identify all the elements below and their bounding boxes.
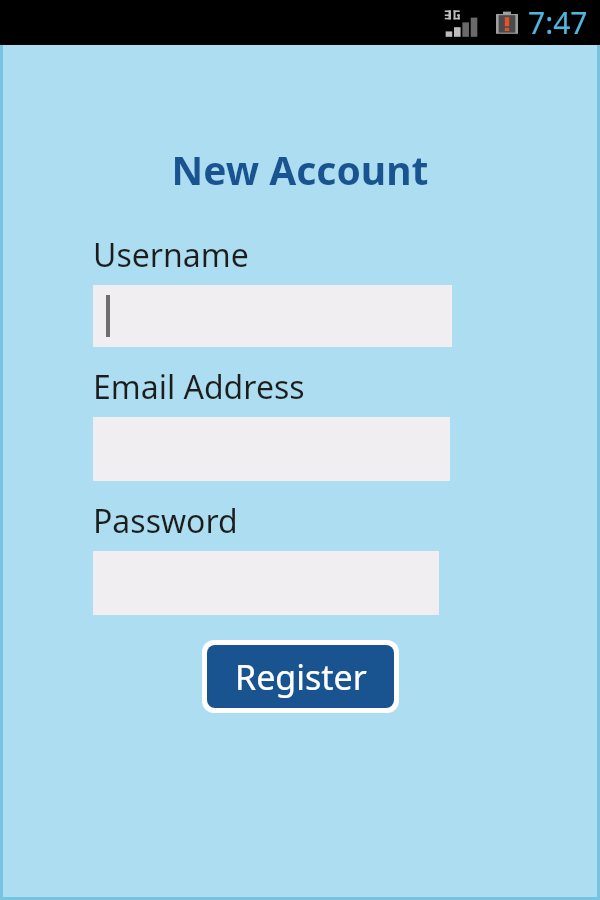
staticText: Username (93, 233, 249, 277)
staticText: New Account (3, 143, 597, 196)
staticText: 7:47 (528, 2, 588, 43)
button[interactable] (93, 285, 452, 347)
staticText: Register (235, 654, 367, 700)
staticText: Password (93, 499, 238, 543)
button[interactable]: Register (207, 645, 394, 708)
staticText: Email Address (93, 365, 305, 409)
